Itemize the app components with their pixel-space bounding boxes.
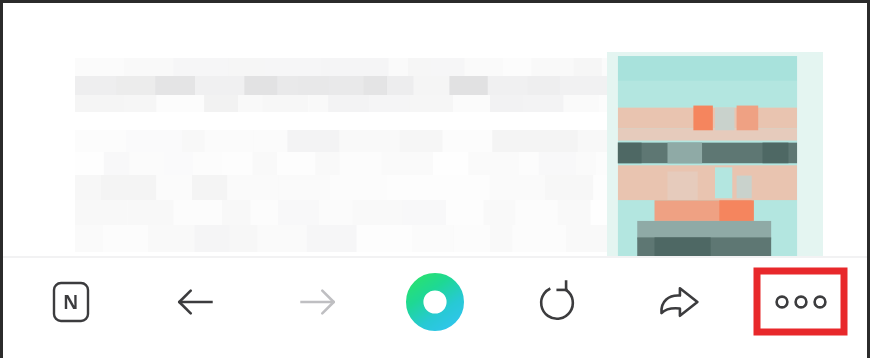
button[interactable]: Refresh: [520, 268, 594, 336]
button[interactable]: Forward: [280, 268, 354, 336]
staticText: N: [63, 289, 79, 315]
button[interactable]: Back: [159, 268, 233, 336]
button[interactable]: Share: [642, 268, 716, 336]
button[interactable]: Home: [398, 268, 472, 336]
button[interactable]: App: [34, 268, 108, 336]
button[interactable]: More options: [757, 271, 844, 332]
